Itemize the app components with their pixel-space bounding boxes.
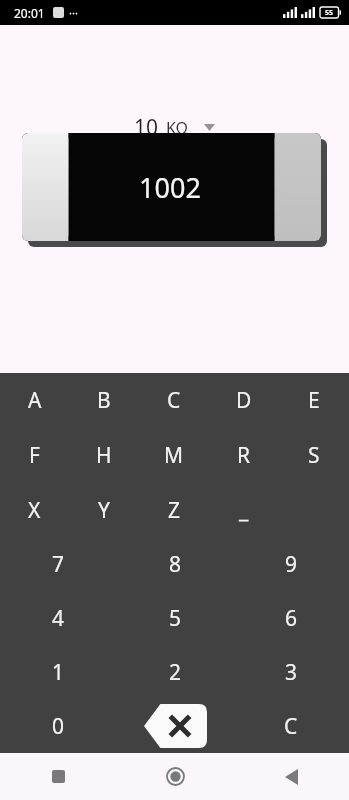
- button[interactable]: 9: [233, 537, 349, 591]
- button[interactable]: F: [0, 428, 69, 483]
- button[interactable]: Backspace: [117, 699, 233, 753]
- staticText: 7: [52, 550, 65, 579]
- button[interactable]: _: [209, 483, 279, 537]
- button[interactable]: M: [139, 428, 209, 483]
- staticText: 9: [285, 550, 298, 579]
- button[interactable]: 7: [0, 537, 117, 591]
- staticText: ···: [69, 5, 78, 20]
- button[interactable]: 6: [233, 591, 349, 645]
- staticText: D: [236, 386, 252, 415]
- button[interactable]: 4: [0, 591, 117, 645]
- staticText: 55: [325, 8, 334, 18]
- button[interactable]: 2: [117, 645, 233, 699]
- staticText: A: [28, 386, 42, 415]
- staticText: E: [308, 386, 320, 415]
- button[interactable]: Recent apps: [0, 753, 117, 800]
- button[interactable]: Z: [139, 483, 209, 537]
- staticText: 6: [285, 604, 298, 633]
- staticText: 8: [169, 550, 182, 579]
- staticText: H: [96, 441, 112, 470]
- staticText: 4: [52, 604, 65, 633]
- staticText: S: [308, 441, 320, 470]
- button[interactable]: C: [139, 373, 209, 428]
- staticText: X: [28, 496, 41, 525]
- staticText: R: [237, 441, 251, 470]
- staticText: Y: [98, 496, 110, 525]
- button[interactable]: E: [279, 373, 349, 428]
- button[interactable]: B: [69, 373, 139, 428]
- staticText: 1: [52, 658, 65, 687]
- staticText: 0: [52, 712, 65, 741]
- button[interactable]: D: [209, 373, 279, 428]
- button[interactable]: X: [0, 483, 69, 537]
- staticText: C: [167, 386, 181, 415]
- button[interactable]: 1002: [22, 133, 327, 266]
- staticText: C: [284, 712, 298, 741]
- staticText: 10: [134, 113, 159, 142]
- button[interactable]: Back: [233, 753, 349, 800]
- button[interactable]: S: [279, 428, 349, 483]
- staticText: KΩ: [166, 117, 188, 139]
- button[interactable]: 10: [128, 111, 221, 144]
- staticText: _: [239, 496, 249, 525]
- staticText: B: [97, 386, 111, 415]
- staticText: 20:01: [14, 5, 45, 21]
- button[interactable]: R: [209, 428, 279, 483]
- button[interactable]: Y: [69, 483, 139, 537]
- button[interactable]: H: [69, 428, 139, 483]
- staticText: M: [164, 441, 184, 470]
- button[interactable]: Home: [117, 753, 233, 800]
- button[interactable]: A: [0, 373, 69, 428]
- button[interactable]: 0: [0, 699, 117, 753]
- button[interactable]: 3: [233, 645, 349, 699]
- staticText: 2: [169, 658, 182, 687]
- button[interactable]: 1: [0, 645, 117, 699]
- staticText: 1002: [139, 169, 201, 206]
- staticText: 5: [169, 604, 182, 633]
- button[interactable]: C: [233, 699, 349, 753]
- staticText: F: [29, 441, 40, 470]
- staticText: Z: [168, 496, 181, 525]
- button[interactable]: 5: [117, 591, 233, 645]
- staticText: 3: [285, 658, 298, 687]
- button[interactable]: 8: [117, 537, 233, 591]
